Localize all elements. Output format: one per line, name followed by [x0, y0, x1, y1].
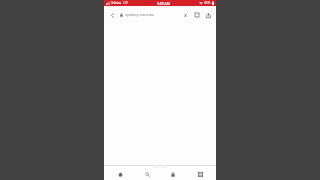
staticText: LTE	[123, 1, 128, 5]
button[interactable]: Back	[107, 10, 117, 20]
staticText: 9:59 AM	[157, 1, 170, 6]
button[interactable]: Home	[110, 169, 130, 180]
button[interactable]: Search	[137, 169, 157, 180]
button[interactable]: sydney.com.au	[118, 10, 190, 19]
button[interactable]: Clear	[182, 12, 188, 18]
button[interactable]: Tabs	[190, 169, 210, 180]
button[interactable]: Bookmark	[192, 10, 202, 20]
staticText: sydney.com.au	[125, 12, 155, 18]
staticText: 95%	[204, 1, 211, 5]
staticText: Telstra	[111, 1, 122, 5]
button[interactable]: Share	[203, 10, 213, 20]
button[interactable]: Saved	[163, 169, 183, 180]
